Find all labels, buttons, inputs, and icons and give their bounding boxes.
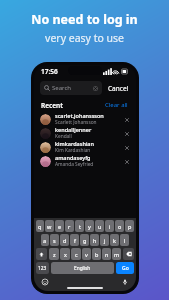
button[interactable]: d	[60, 234, 69, 246]
button[interactable]: l	[120, 234, 129, 246]
button[interactable]: k	[110, 234, 119, 246]
button[interactable]: a	[41, 234, 49, 246]
staticText: t	[79, 223, 81, 230]
staticText: Scarlett Johansson	[55, 119, 97, 126]
staticText: h	[93, 237, 97, 244]
button[interactable]: Cancel	[107, 82, 130, 95]
staticText: f	[74, 237, 76, 244]
staticText: x	[64, 251, 67, 258]
staticText: l	[124, 237, 126, 244]
button[interactable]: x	[60, 248, 70, 260]
button[interactable]: Emoji	[41, 278, 49, 286]
staticText: w	[47, 223, 52, 230]
staticText: k	[113, 237, 116, 244]
button[interactable]: u	[95, 220, 104, 232]
staticText: very easy to use	[45, 31, 124, 45]
button[interactable]: Go	[116, 262, 134, 274]
staticText: m	[114, 251, 120, 258]
button[interactable]: b	[92, 248, 101, 260]
button[interactable]: h	[90, 234, 99, 246]
button[interactable]: Remove	[123, 116, 130, 123]
button[interactable]: j	[100, 234, 109, 246]
button[interactable]: Remove	[123, 144, 130, 151]
staticText: No need to log in	[31, 11, 138, 28]
button[interactable]: Dictate	[121, 278, 129, 286]
staticText: Kendall	[55, 133, 72, 140]
staticText: q	[38, 223, 42, 230]
staticText: a	[43, 237, 47, 244]
button[interactable]: Remove	[123, 158, 130, 165]
button[interactable]: kendalljenner	[34, 126, 136, 140]
staticText: kendalljenner	[55, 126, 92, 133]
button[interactable]: y	[85, 220, 94, 232]
button[interactable]: c	[71, 248, 81, 260]
button[interactable]: n	[102, 248, 111, 260]
staticText: y	[88, 223, 91, 230]
button[interactable]: z	[49, 248, 59, 260]
staticText: z	[53, 251, 56, 258]
staticText: c	[75, 251, 78, 258]
staticText: Clear all	[105, 101, 128, 109]
staticText: Search	[52, 84, 71, 92]
button[interactable]: e	[55, 220, 64, 232]
button[interactable]: Search	[40, 81, 102, 95]
button[interactable]: m	[112, 248, 121, 260]
staticText: g	[83, 237, 87, 244]
staticText: English	[74, 265, 91, 272]
staticText: scarlet.johanssson	[55, 112, 104, 119]
button[interactable]: Clear all	[104, 100, 129, 110]
button[interactable]: Remove	[123, 130, 130, 137]
staticText: p	[128, 223, 132, 230]
button[interactable]: r	[65, 220, 74, 232]
staticText: amandaseyfg	[55, 154, 91, 161]
staticText: e	[58, 223, 62, 230]
button[interactable]: v	[82, 248, 91, 260]
button[interactable]: g	[80, 234, 89, 246]
staticText: 17:56	[41, 67, 58, 76]
staticText: Cancel	[108, 84, 129, 93]
button[interactable]: scarlet.johanssson	[34, 112, 136, 126]
staticText: v	[85, 251, 88, 258]
button[interactable]: English	[51, 262, 114, 274]
button[interactable]: s	[50, 234, 59, 246]
staticText: s	[53, 237, 56, 244]
button[interactable]: f	[70, 234, 79, 246]
staticText: u	[98, 223, 102, 230]
button[interactable]: o	[115, 220, 124, 232]
staticText: kimkardashian	[55, 140, 94, 147]
staticText: o	[118, 223, 122, 230]
staticText: n	[105, 251, 109, 258]
staticText: Amanda Seyfried	[55, 161, 94, 168]
button[interactable]: w	[45, 220, 54, 232]
staticText: 123	[38, 265, 47, 272]
button[interactable]: i	[105, 220, 114, 232]
button[interactable]: amandaseyfg	[34, 154, 136, 168]
staticText: j	[104, 237, 106, 244]
button[interactable]: t	[75, 220, 84, 232]
button[interactable]: kimkardashian	[34, 140, 136, 154]
staticText: b	[95, 251, 99, 258]
staticText: Kim Kardashian	[55, 147, 91, 154]
staticText: r	[68, 223, 71, 230]
staticText: i	[109, 223, 111, 230]
staticText: Go	[122, 265, 129, 272]
button[interactable]: Shift	[36, 248, 47, 260]
button[interactable]: q	[36, 220, 44, 232]
button[interactable]: Backspace	[123, 248, 134, 260]
staticText: Recent	[41, 101, 63, 110]
staticText: d	[63, 237, 67, 244]
button[interactable]: 123	[36, 262, 49, 274]
button[interactable]: p	[125, 220, 134, 232]
